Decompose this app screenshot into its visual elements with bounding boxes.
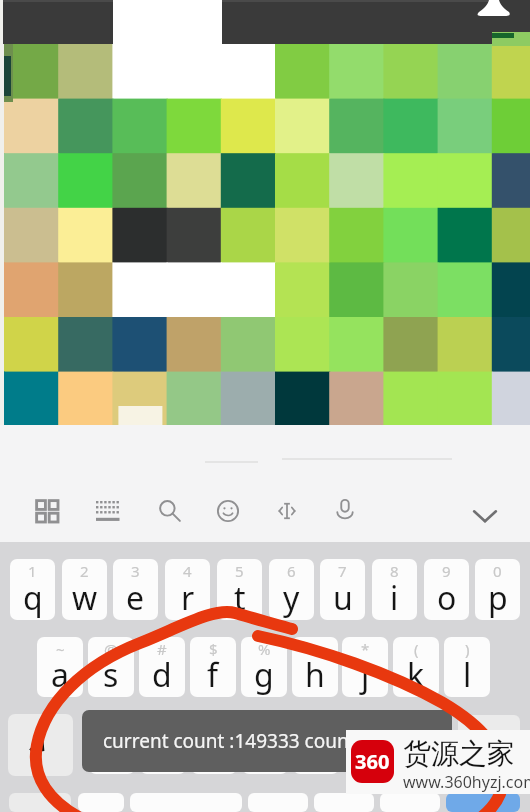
staticText: 8 [390,561,399,581]
button[interactable]: 2 [62,559,107,620]
staticText: ! [415,717,420,737]
button[interactable]: + [140,715,186,774]
button[interactable]: : [293,715,339,774]
button[interactable]: 4 [165,559,210,620]
staticText: e [126,576,145,620]
button[interactable]: 1 [10,559,55,620]
button[interactable]: 5 [217,559,262,620]
staticText: ( [414,639,419,659]
staticText: 360 [355,748,390,775]
button[interactable]: ! [394,715,440,774]
staticText: k [407,653,425,697]
staticText: * [361,639,370,659]
button[interactable]: & [292,637,338,697]
button[interactable]: Backspace [458,715,520,774]
staticText: x [155,731,172,774]
button[interactable]: Language [314,793,374,812]
button[interactable]: Hide keyboard [462,493,508,539]
button[interactable]: Search [149,490,191,532]
button[interactable]: Emoji [207,490,249,532]
staticText: m [402,731,432,774]
button[interactable]: Enter [446,793,520,812]
staticText: z [104,731,120,774]
staticText: a [51,653,69,697]
staticText: 4 [183,561,192,581]
button[interactable]: Period [248,793,308,812]
staticText: o [437,576,457,620]
staticText: i [390,576,399,620]
button[interactable]: Keyboard [86,491,130,535]
staticText: ~ [56,639,65,659]
button[interactable]: ) [444,637,490,697]
button[interactable]: % [241,637,287,697]
button[interactable]: * [342,637,388,697]
button[interactable]: Apps [26,490,68,532]
staticText: p [488,576,508,620]
staticText: current count :149333 countAu [103,728,380,754]
button[interactable]: 8 [372,559,417,620]
staticText: $ [209,639,218,659]
staticText: # [157,639,167,659]
button[interactable]: - [89,715,135,774]
staticText: q [23,576,43,620]
staticText: 9 [442,561,451,581]
button[interactable]: = [191,715,237,774]
staticText: 0 [493,561,502,581]
button[interactable]: Voice input [324,489,366,531]
staticText: www.360hyzj.com [403,771,530,793]
staticText: f [207,653,219,697]
staticText: d [152,653,172,697]
staticText: 货源之家 [403,736,515,771]
button[interactable]: 9 [424,559,469,620]
button[interactable]: Emoji key [380,793,440,812]
staticText: @ [104,639,118,659]
button[interactable]: Symbols [9,793,71,812]
button[interactable]: 3 [113,559,158,620]
button[interactable]: Shift [8,714,73,776]
staticText: h [305,653,325,697]
staticText: t [234,576,246,620]
staticText: b [306,731,326,774]
staticText: 2 [80,561,89,581]
button[interactable]: @ [88,637,134,697]
button[interactable]: ~ [37,637,83,697]
staticText: + [159,717,168,737]
staticText: w [72,576,98,620]
button[interactable]: 0 [475,559,520,620]
staticText: % [258,639,271,659]
staticText: s [103,653,119,697]
staticText: 6 [287,561,296,581]
staticText: g [254,653,274,697]
staticText: / [262,717,268,737]
button[interactable]: Space [130,793,242,812]
staticText: n [357,731,377,774]
staticText: r [181,576,195,620]
button[interactable]: / [242,715,288,774]
button[interactable]: 6 [269,559,314,620]
staticText: c [206,731,222,774]
button[interactable]: current count :149333 countAu [82,710,452,772]
staticText: y [283,576,300,620]
button[interactable]: Move cursor [266,490,308,532]
staticText: j [361,653,370,697]
staticText: v [257,731,274,774]
button[interactable]: $ [190,637,236,697]
button[interactable]: 7 [320,559,365,620]
staticText: 7 [338,561,347,581]
button[interactable]: ( [393,637,439,697]
staticText: 1 [28,561,37,581]
staticText: 3 [131,561,140,581]
staticText: l [463,653,472,697]
staticText: ) [465,639,470,659]
staticText: ; [365,717,370,737]
button[interactable]: ; [344,715,390,774]
staticText: & [310,639,321,659]
staticText: u [333,576,353,620]
staticText: 5 [235,561,244,581]
button[interactable]: # [139,637,185,697]
button[interactable]: Comma [78,793,124,812]
